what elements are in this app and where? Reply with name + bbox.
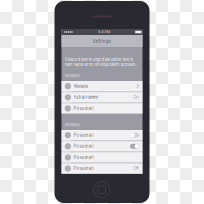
- staticText: Posuerari: [74, 166, 94, 171]
- button[interactable]: Posuerari: [61, 130, 142, 140]
- staticText: Ekstrasis: [65, 73, 80, 78]
- staticText: Posuerari: [74, 155, 94, 160]
- staticText: 9:41 PM: [98, 30, 110, 34]
- staticText: On: [133, 95, 139, 100]
- button[interactable]: Turn on: [130, 133, 139, 138]
- button[interactable]: Futral rowem: [61, 92, 142, 102]
- button[interactable]: Posuerari: [61, 152, 142, 163]
- staticText: Ekstrasis: [65, 122, 80, 127]
- staticText: Posuerari: [74, 144, 94, 149]
- staticText: Settings: [92, 38, 111, 44]
- staticText: Futral rowem: [74, 95, 99, 100]
- button[interactable]: Posuerari: [61, 141, 142, 151]
- button[interactable]: Posuerari: [61, 163, 142, 174]
- staticText: Off: [133, 166, 139, 171]
- staticText: Posuerari: [74, 106, 94, 111]
- button[interactable]: Posuerari: [61, 103, 142, 114]
- staticText: Novacia: [74, 84, 88, 89]
- button[interactable]: Novacia: [61, 81, 142, 91]
- button[interactable]: Turn off: [130, 144, 139, 149]
- staticText: Swipe down to copy data under text in, n…: [65, 57, 139, 67]
- staticText: Posuerari: [74, 133, 94, 138]
